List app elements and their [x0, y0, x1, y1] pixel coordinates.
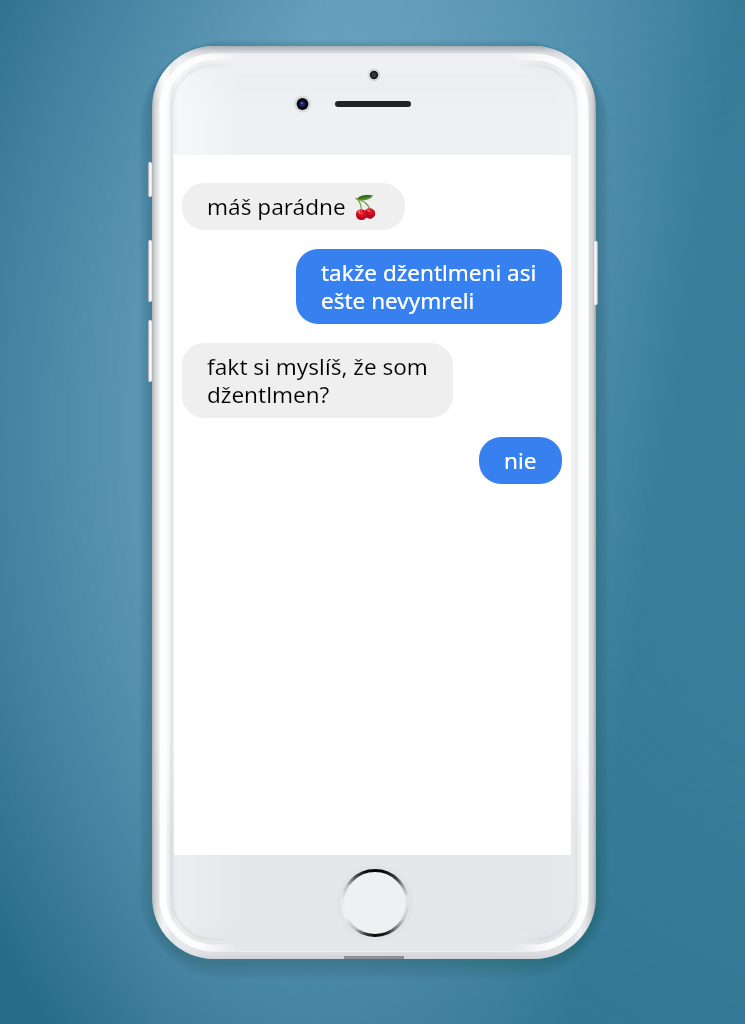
button[interactable]: nie	[479, 437, 562, 484]
button[interactable]: Home	[338, 866, 412, 940]
button[interactable]: fakt si myslíš, že som džentlmen?	[182, 343, 453, 418]
button[interactable]: takže džentlmeni asi ešte nevymreli	[296, 249, 562, 324]
button[interactable]: Side button	[594, 241, 598, 305]
staticText: máš parádne 🍒	[207, 191, 380, 222]
button[interactable]: máš parádne 🍒	[182, 183, 405, 230]
staticText: takže džentlmeni asi ešte nevymreli	[321, 257, 537, 316]
button[interactable]: Side button	[148, 162, 152, 197]
button[interactable]: Side button	[148, 240, 152, 302]
button[interactable]: Side button	[148, 320, 152, 382]
staticText: fakt si myslíš, že som džentlmen?	[207, 351, 428, 410]
staticText: nie	[504, 445, 537, 476]
